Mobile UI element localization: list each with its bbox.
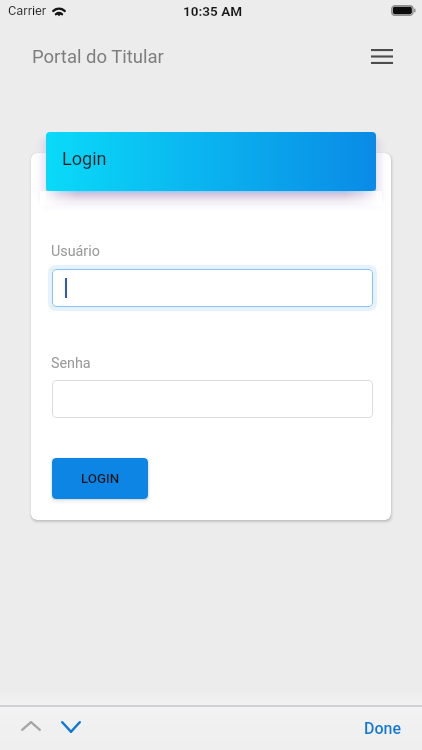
staticText: 10:35 AM <box>183 3 243 19</box>
button[interactable]: Done <box>350 707 416 750</box>
button[interactable]: Next field <box>48 707 94 750</box>
button[interactable]: Senha field <box>52 380 373 418</box>
staticText: Portal do Titular <box>32 46 164 68</box>
staticText: Done <box>364 719 402 738</box>
staticText: Login <box>62 148 107 169</box>
staticText: Usuário <box>51 243 100 260</box>
button[interactable]: Previous field <box>8 707 54 750</box>
staticText: Senha <box>51 355 91 372</box>
button[interactable]: LOGIN <box>52 458 148 499</box>
button[interactable]: Menu <box>360 34 404 78</box>
staticText: LOGIN <box>81 471 120 487</box>
staticText: Carrier <box>8 3 47 18</box>
button[interactable]: Usuário field <box>48 265 377 311</box>
